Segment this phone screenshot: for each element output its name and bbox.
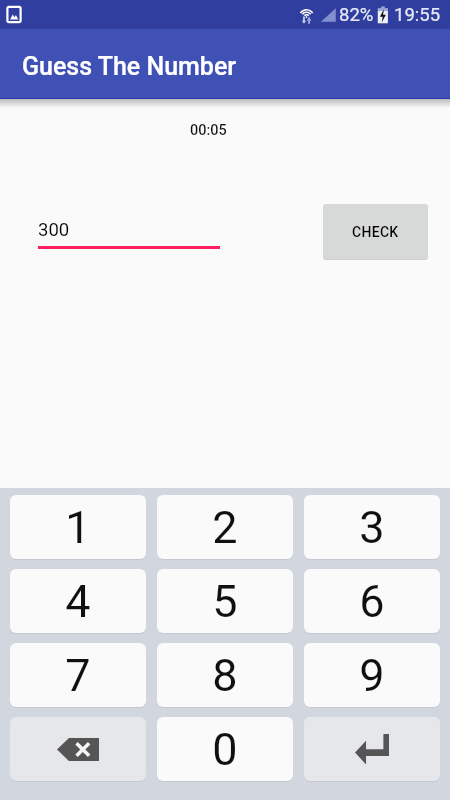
button[interactable]: 3: [304, 495, 440, 559]
staticText: 82%: [339, 4, 374, 26]
staticText: 8: [212, 649, 238, 702]
staticText: Guess The Number: [22, 52, 237, 81]
staticText: CHECK: [352, 224, 399, 240]
staticText: 1: [65, 501, 91, 554]
staticText: 5: [212, 575, 238, 628]
button[interactable]: 4: [10, 569, 146, 633]
staticText: 7: [65, 649, 91, 702]
button[interactable]: 0: [157, 717, 293, 781]
button[interactable]: 5: [157, 569, 293, 633]
staticText: 0: [212, 723, 238, 776]
button[interactable]: 300: [38, 219, 220, 241]
button[interactable]: 2: [157, 495, 293, 559]
button[interactable]: 6: [304, 569, 440, 633]
staticText: 4: [65, 575, 91, 628]
button[interactable]: Enter: [304, 717, 440, 781]
button[interactable]: CHECK: [323, 204, 428, 259]
staticText: 6: [359, 575, 385, 628]
button[interactable]: 9: [304, 643, 440, 707]
button[interactable]: Delete: [10, 717, 146, 781]
staticText: 00:05: [190, 122, 227, 139]
button[interactable]: 7: [10, 643, 146, 707]
button[interactable]: 1: [10, 495, 146, 559]
staticText: 19:55: [394, 4, 441, 26]
staticText: 3: [359, 501, 385, 554]
staticText: 300: [38, 219, 70, 241]
staticText: 2: [212, 501, 238, 554]
button[interactable]: 8: [157, 643, 293, 707]
staticText: 9: [359, 649, 385, 702]
